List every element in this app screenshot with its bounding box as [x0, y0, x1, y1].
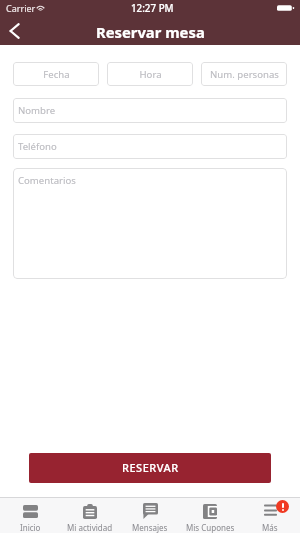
button[interactable]: Fecha [13, 62, 99, 86]
button[interactable]: RESERVAR [29, 453, 271, 483]
button[interactable]: Hora [107, 62, 193, 86]
button[interactable]: Teléfono [13, 134, 287, 159]
button[interactable]: Num. personas [201, 62, 287, 86]
staticText: 12:27 PM [131, 2, 174, 15]
button[interactable]: Inicio [0, 497, 60, 533]
staticText: RESERVAR [122, 460, 179, 475]
staticText: Carrier [6, 2, 36, 14]
staticText: Reservar mesa [96, 22, 205, 42]
staticText: Comentarios [18, 174, 76, 187]
staticText: Num. personas [210, 68, 279, 81]
button[interactable]: Mensajes [120, 497, 180, 533]
staticText: Más [262, 522, 278, 533]
button[interactable]: Mi actividad [60, 497, 120, 533]
staticText: Hora [139, 68, 162, 81]
button[interactable]: Mis Cupones [180, 497, 240, 533]
staticText: Mensajes [132, 522, 168, 533]
staticText: Fecha [43, 68, 70, 81]
staticText: Teléfono [18, 140, 57, 153]
button[interactable]: Back [0, 16, 28, 45]
button[interactable]: Nombre [13, 98, 287, 123]
staticText: Inicio [20, 522, 41, 533]
staticText: Nombre [18, 104, 56, 117]
staticText: Mi actividad [67, 522, 113, 533]
button[interactable]: Más [240, 497, 300, 533]
button[interactable]: Comentarios [13, 168, 287, 279]
staticText: Mis Cupones [186, 522, 235, 533]
